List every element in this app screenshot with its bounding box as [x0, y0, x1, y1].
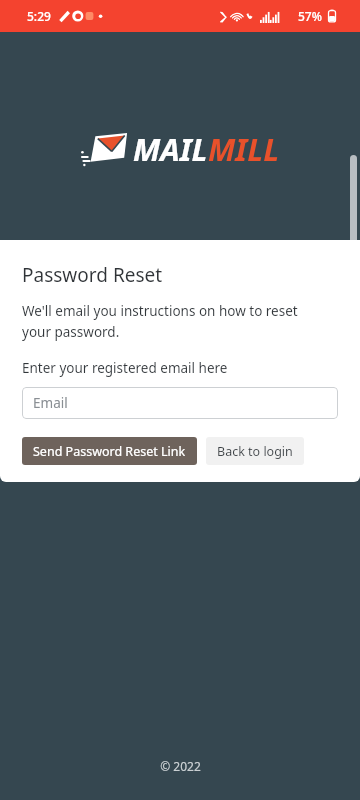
- staticText: Send Password Reset Link: [33, 443, 186, 460]
- staticText: Enter your registered email here: [22, 359, 228, 377]
- staticText: Back to login: [217, 443, 293, 460]
- staticText: © 2022: [160, 758, 201, 774]
- staticText: MAIL: [133, 128, 208, 170]
- staticText: Password Reset: [22, 262, 163, 288]
- staticText: We'll email you instructions on how to r…: [22, 302, 330, 341]
- button[interactable]: Email: [22, 387, 338, 419]
- button[interactable]: Send Password Reset Link: [22, 437, 197, 465]
- staticText: Email: [33, 394, 68, 412]
- staticText: MILL: [208, 128, 280, 170]
- staticText: 5:29: [27, 8, 51, 24]
- staticText: 57%: [298, 8, 322, 24]
- button[interactable]: Back to login: [206, 437, 304, 465]
